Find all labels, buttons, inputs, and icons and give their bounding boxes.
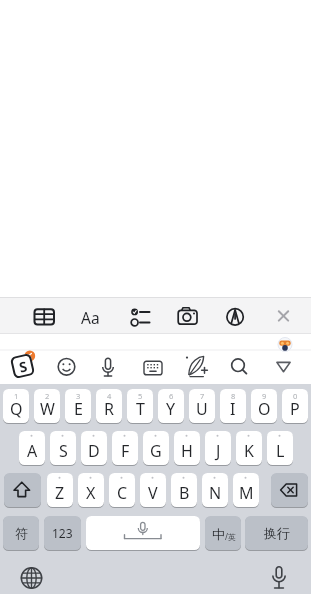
staticText: 符	[15, 525, 28, 541]
staticText: E	[74, 398, 83, 420]
staticText: W	[40, 398, 55, 420]
button[interactable]: 6	[158, 389, 184, 423]
button[interactable]	[27, 299, 61, 333]
button[interactable]: X	[78, 473, 104, 507]
button[interactable]: A	[19, 431, 45, 465]
staticText: G	[150, 440, 162, 462]
button[interactable]	[273, 351, 305, 383]
button[interactable]	[4, 473, 41, 507]
staticText: /英	[225, 531, 236, 542]
staticText: R	[104, 398, 114, 420]
button[interactable]	[75, 299, 109, 333]
staticText: 换行	[264, 525, 290, 541]
button[interactable]	[170, 299, 204, 333]
button[interactable]: 0	[282, 389, 308, 423]
button[interactable]: 符	[3, 516, 39, 550]
staticText: V	[148, 482, 158, 504]
button[interactable]: V	[140, 473, 166, 507]
button[interactable]: D	[81, 431, 107, 465]
button[interactable]	[218, 299, 252, 333]
button[interactable]: S	[10, 353, 35, 379]
button[interactable]	[228, 351, 260, 383]
button[interactable]: 9	[251, 389, 277, 423]
button[interactable]: 4	[96, 389, 122, 423]
staticText: S	[17, 356, 29, 376]
staticText: 0	[293, 391, 298, 401]
button[interactable]	[266, 299, 300, 333]
staticText: 6	[169, 391, 174, 401]
staticText: 7	[200, 391, 205, 401]
button[interactable]: Z	[47, 473, 73, 507]
staticText: 中	[212, 526, 225, 542]
button[interactable]: H	[174, 431, 200, 465]
staticText: 3	[76, 391, 81, 401]
staticText: M	[239, 482, 254, 504]
staticText: N	[209, 482, 222, 504]
button[interactable]: 换行	[245, 516, 308, 550]
staticText: X	[86, 482, 96, 504]
button[interactable]	[262, 561, 297, 594]
staticText: I	[230, 398, 236, 420]
staticText: 8	[231, 391, 236, 401]
staticText: P	[290, 398, 300, 420]
staticText: J	[216, 440, 221, 462]
staticText: C	[117, 482, 128, 504]
staticText: L	[276, 440, 285, 462]
button[interactable]: 中	[205, 516, 241, 550]
button[interactable]: K	[236, 431, 262, 465]
staticText: U	[196, 398, 208, 420]
button[interactable]: 8	[220, 389, 246, 423]
staticText: Q	[10, 398, 23, 420]
staticText: A	[27, 440, 38, 462]
button[interactable]: F	[112, 431, 138, 465]
button[interactable]	[95, 351, 127, 383]
button[interactable]: N	[202, 473, 228, 507]
staticText: Y	[166, 398, 176, 420]
button[interactable]: 3	[65, 389, 91, 423]
button[interactable]	[139, 351, 171, 383]
staticText: T	[136, 398, 145, 420]
staticText: F	[121, 440, 130, 462]
staticText: 5	[138, 391, 143, 401]
button[interactable]: 5	[127, 389, 153, 423]
staticText: Aa	[81, 307, 100, 328]
staticText: 2	[45, 391, 50, 401]
button[interactable]	[184, 351, 216, 383]
staticText: 1	[14, 391, 19, 401]
button[interactable]: C	[109, 473, 135, 507]
button[interactable]: 7	[189, 389, 215, 423]
button[interactable]: G	[143, 431, 169, 465]
button[interactable]	[51, 351, 83, 383]
button[interactable]: L	[267, 431, 293, 465]
button[interactable]: B	[171, 473, 197, 507]
button[interactable]: 123	[44, 516, 81, 550]
staticText: B	[179, 482, 190, 504]
staticText: O	[258, 398, 271, 420]
button[interactable]	[123, 299, 157, 333]
button[interactable]: 1	[3, 389, 29, 423]
button[interactable]: J	[205, 431, 231, 465]
button[interactable]: S	[50, 431, 76, 465]
button[interactable]: 2	[34, 389, 60, 423]
staticText: 123	[52, 525, 73, 541]
staticText: Z	[55, 482, 65, 504]
staticText: K	[244, 440, 254, 462]
staticText: D	[88, 440, 100, 462]
staticText: H	[181, 440, 193, 462]
button[interactable]	[271, 473, 308, 507]
button[interactable]	[14, 561, 49, 594]
button[interactable]: M	[233, 473, 259, 507]
staticText: 9	[262, 391, 267, 401]
button[interactable]	[86, 516, 200, 550]
staticText: 4	[107, 391, 112, 401]
staticText: S	[59, 440, 68, 462]
